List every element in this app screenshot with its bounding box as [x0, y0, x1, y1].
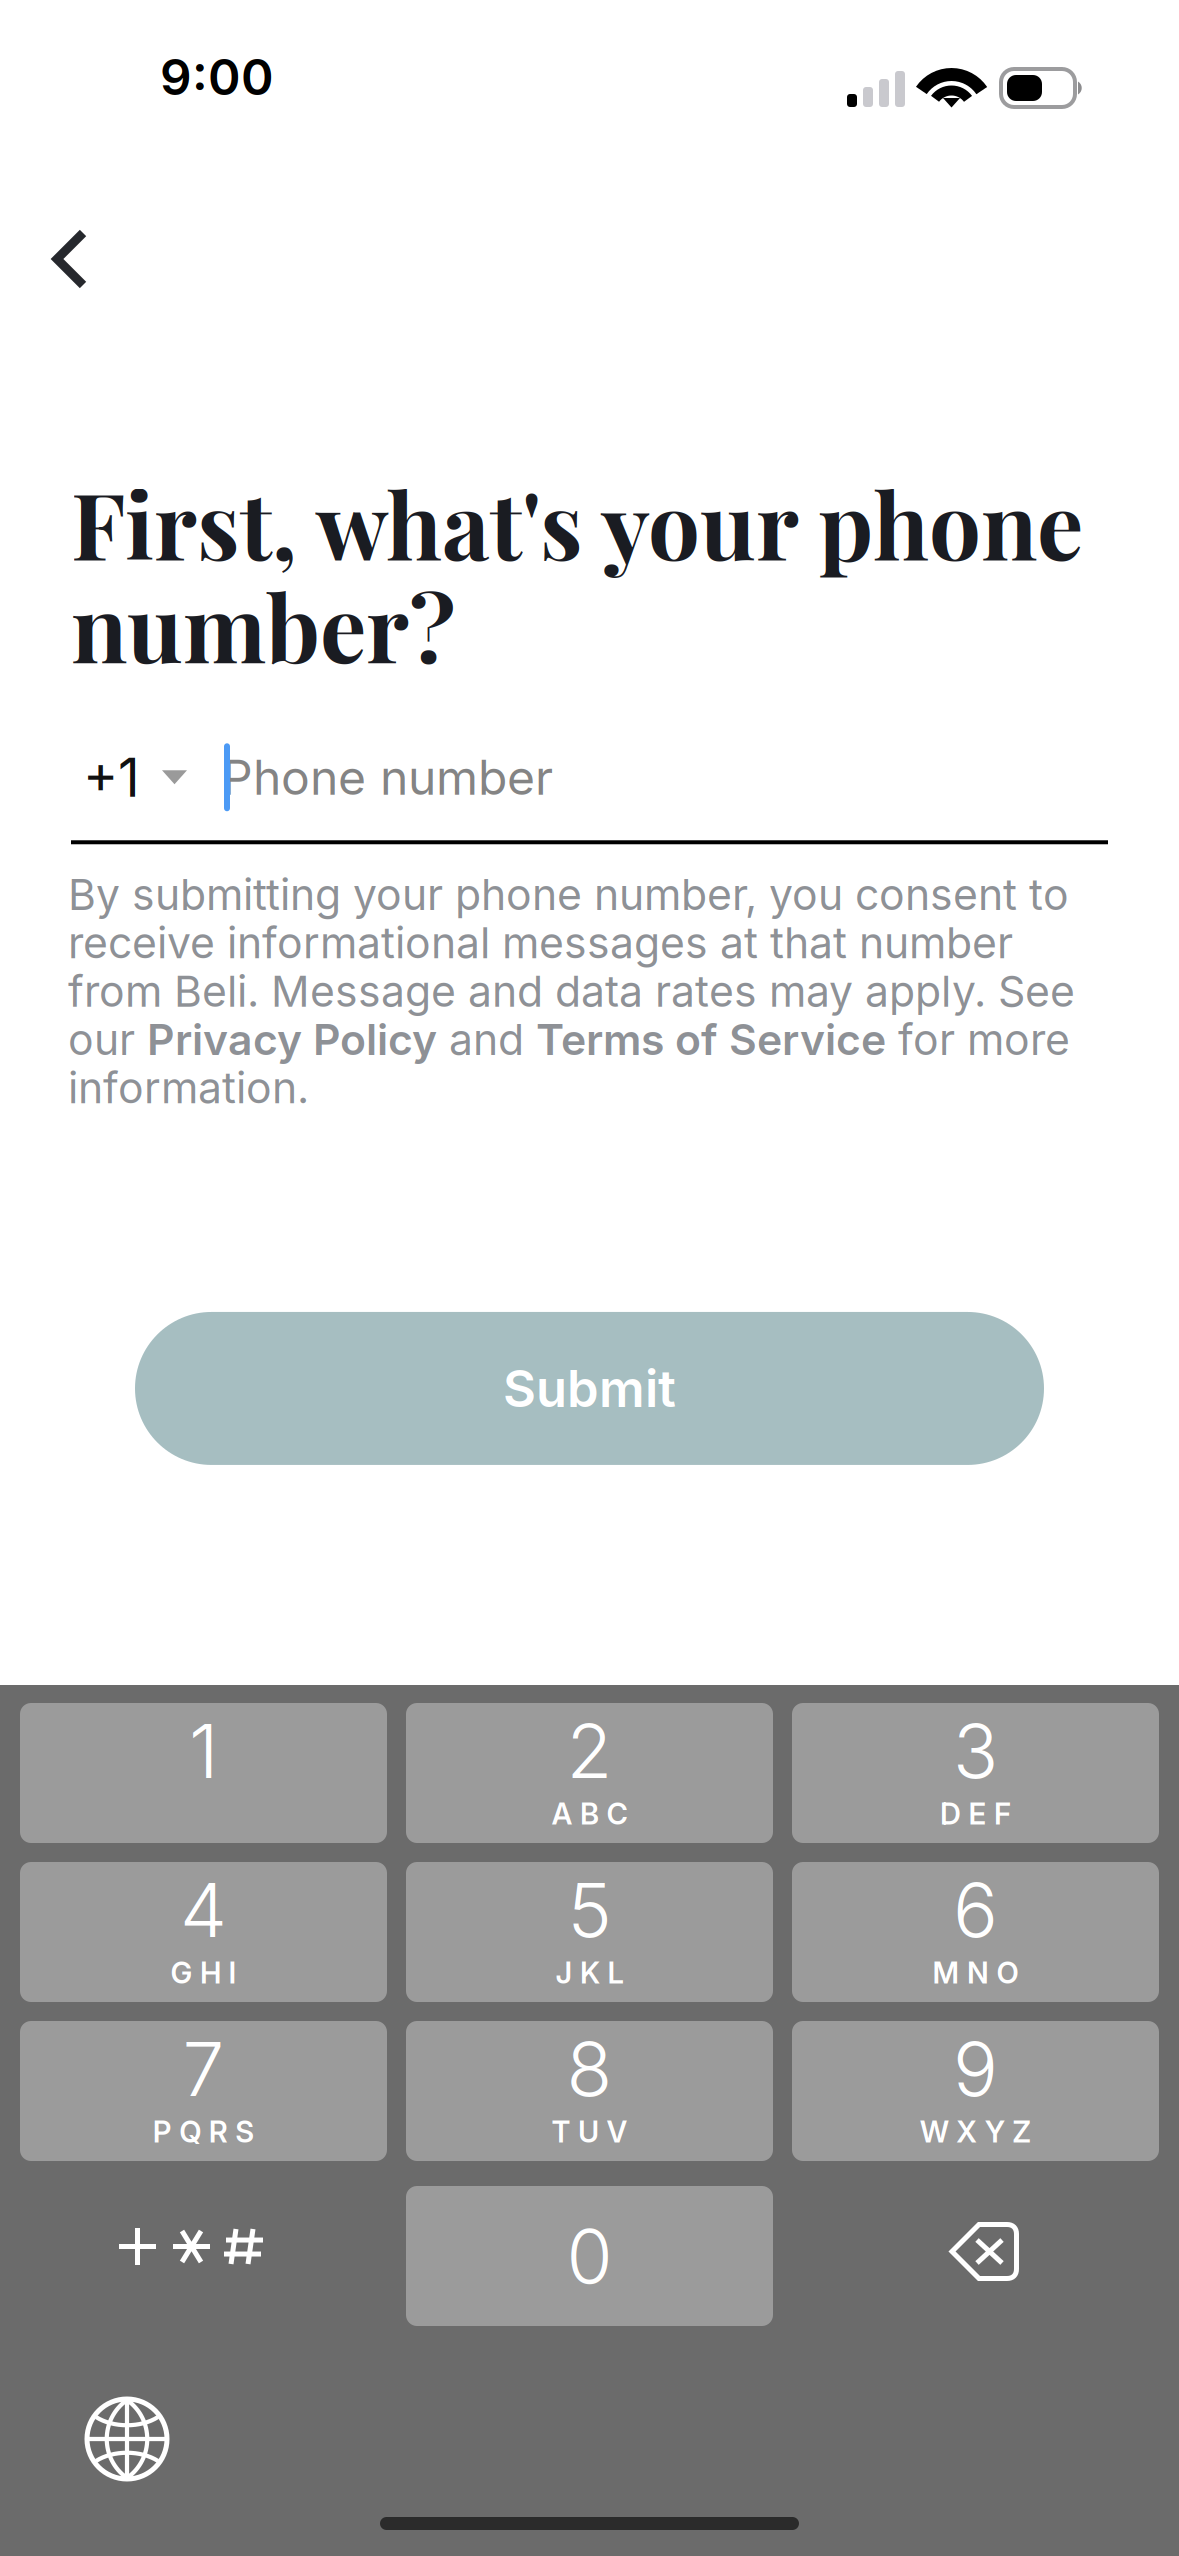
staticText: 9: [953, 2024, 998, 2114]
staticText: 5: [567, 1865, 611, 1955]
staticText: DEF: [940, 1796, 1011, 1831]
button[interactable]: 8: [406, 2021, 773, 2161]
button[interactable]: 0: [406, 2186, 773, 2326]
staticText: By submitting your phone number, you con…: [68, 869, 1075, 1113]
staticText: 0: [566, 2211, 612, 2301]
staticText: 6: [953, 1865, 998, 1955]
button[interactable]: Submit: [135, 1312, 1044, 1465]
button[interactable]: 7: [20, 2021, 387, 2161]
staticText: +1: [83, 745, 140, 809]
staticText: 2: [566, 1706, 612, 1796]
staticText: First, what's your phone number?: [71, 461, 1083, 686]
staticText: WXYZ: [920, 2114, 1031, 2149]
staticText: MNO: [932, 1955, 1018, 1990]
staticText: JKL: [555, 1955, 623, 1990]
button[interactable]: 1: [20, 1703, 387, 1843]
staticText: 7: [182, 2024, 224, 2114]
button[interactable]: 6: [792, 1862, 1159, 2002]
button[interactable]: Back: [18, 207, 122, 311]
staticText: 1: [189, 1706, 218, 1796]
staticText: 9:00: [160, 47, 274, 107]
button[interactable]: Next keyboard: [57, 2379, 197, 2499]
button[interactable]: 5: [406, 1862, 773, 2002]
staticText: TUV: [551, 2114, 627, 2149]
staticText: GHI: [170, 1955, 236, 1990]
staticText: Submit: [503, 1358, 676, 1419]
staticText: 3: [953, 1706, 998, 1796]
button[interactable]: 9: [792, 2021, 1159, 2161]
button[interactable]: 2: [406, 1703, 773, 1843]
button[interactable]: Delete: [792, 2186, 1159, 2326]
staticText: Phone number: [222, 748, 553, 806]
staticText: PQRS: [153, 2114, 254, 2149]
button[interactable]: +1: [83, 737, 187, 817]
staticText: 8: [566, 2024, 612, 2114]
button[interactable]: 3: [792, 1703, 1159, 1843]
staticText: 4: [180, 1865, 227, 1955]
button[interactable]: Plus star pound: [20, 2186, 387, 2326]
button[interactable]: 4: [20, 1862, 387, 2002]
staticText: ABC: [551, 1796, 627, 1831]
